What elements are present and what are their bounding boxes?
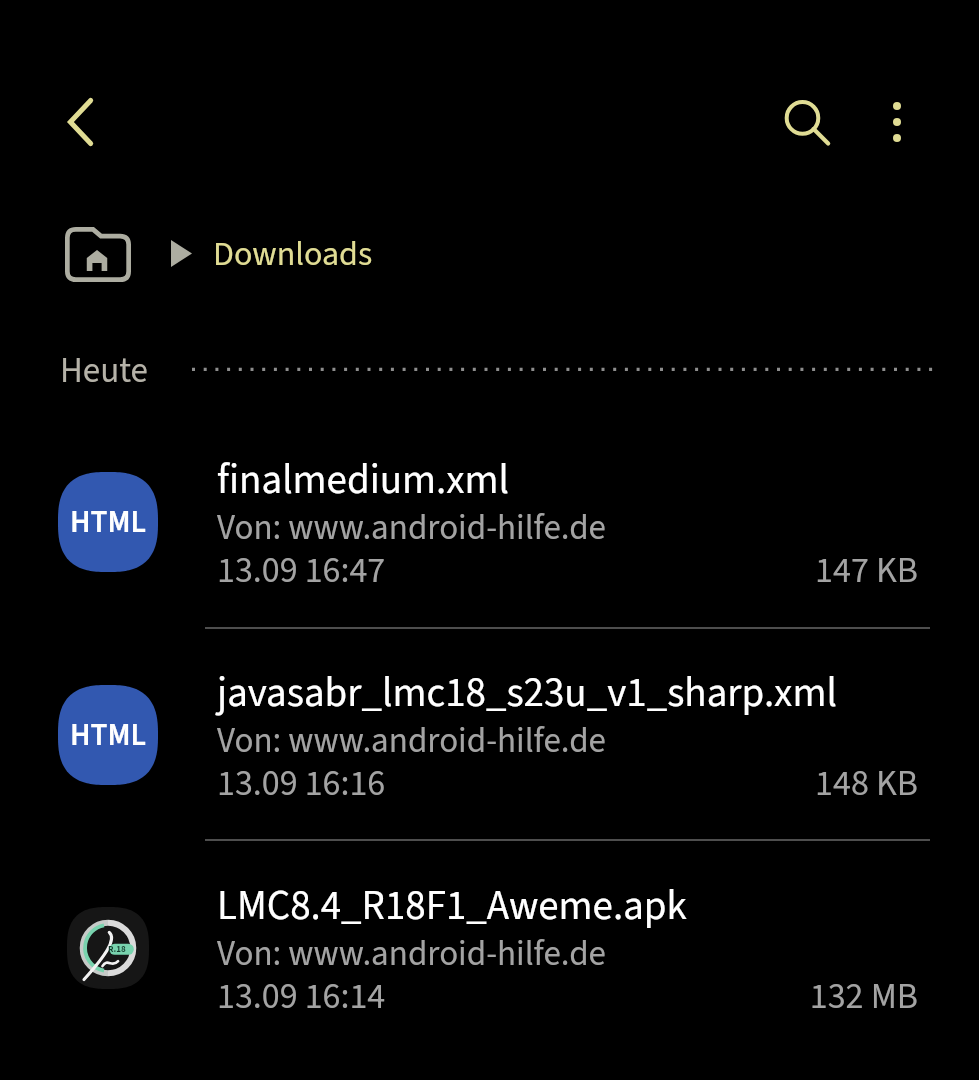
staticText: Downloads <box>213 230 373 278</box>
staticText: 132 MB <box>800 971 918 1022</box>
button[interactable]: HTML <box>0 415 979 628</box>
button[interactable]: Back <box>35 77 125 167</box>
staticText: HTML <box>70 713 147 757</box>
staticText: 13.09 16:47 <box>217 545 386 596</box>
button[interactable]: Downloads <box>213 230 373 278</box>
button[interactable]: Home folder <box>48 208 148 300</box>
button[interactable]: HTML <box>0 628 979 841</box>
staticText: Heute <box>60 346 148 396</box>
staticText: 147 KB <box>800 545 918 596</box>
staticText: LMC8.4_R18F1_Aweme.apk <box>217 877 687 935</box>
staticText: 13.09 16:14 <box>217 971 386 1022</box>
staticText: Von: www.android-hilfe.de <box>217 929 606 979</box>
staticText: finalmedium.xml <box>217 451 510 509</box>
button[interactable]: Search <box>758 75 848 165</box>
staticText: Von: www.android-hilfe.de <box>217 716 606 766</box>
staticText: HTML <box>70 500 147 544</box>
staticText: 148 KB <box>800 758 918 809</box>
button[interactable]: More options <box>852 77 942 167</box>
button[interactable]: R.18 <box>0 841 979 1054</box>
staticText: 13.09 16:16 <box>217 758 386 809</box>
staticText: javasabr_lmc18_s23u_v1_sharp.xml <box>217 664 837 722</box>
staticText: R.18 <box>108 943 126 956</box>
staticText: Von: www.android-hilfe.de <box>217 503 606 553</box>
